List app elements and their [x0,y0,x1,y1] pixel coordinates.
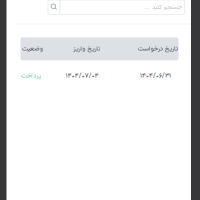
staticText: تاریخ درخواست [137,44,177,54]
button[interactable]: Search [48,0,60,14]
staticText: پرداخت [20,71,40,81]
staticText: تاریخ واریز [73,44,100,54]
button[interactable]: جستجو کنید ... [60,0,184,14]
staticText: ۱۴۰۴/۰۶/۳۱ [140,71,171,81]
staticText: ۱۴۰۴/۰۷/۰۴ [66,71,99,81]
staticText: وضعیت [21,44,42,54]
staticText: جستجو کنید ... [143,3,181,12]
